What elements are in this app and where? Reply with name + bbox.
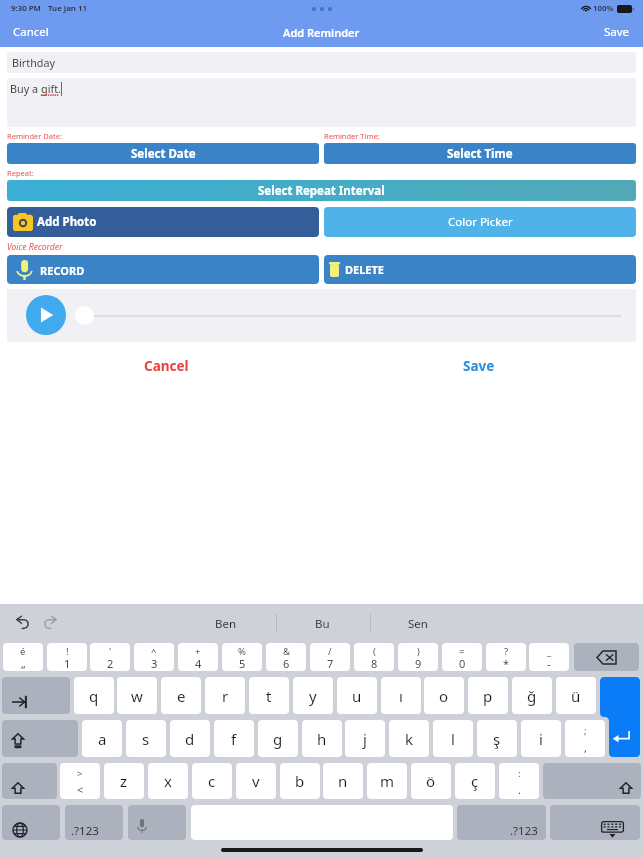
button[interactable]: Language [2, 805, 60, 840]
staticText: c [208, 771, 216, 791]
button[interactable]: Birthday [7, 52, 636, 73]
button[interactable]: r [205, 677, 245, 714]
button[interactable]: k [389, 720, 429, 757]
button[interactable]: Shift [2, 720, 78, 757]
button[interactable]: Buy a [7, 78, 636, 127]
button[interactable]: Select Time [324, 143, 636, 164]
button[interactable]: _ [529, 643, 569, 671]
staticText: j [363, 729, 367, 749]
button[interactable]: Cancel [0, 17, 62, 47]
button[interactable]: Sen [370, 607, 466, 640]
button[interactable]: Undo [6, 606, 39, 640]
button[interactable]: Select Date [7, 143, 319, 164]
button[interactable]: RECORD [7, 255, 319, 284]
staticText: ? [504, 645, 509, 658]
button[interactable]: p [468, 677, 508, 714]
staticText: : [518, 767, 521, 780]
button[interactable]: u [337, 677, 377, 714]
button[interactable]: w [117, 677, 157, 714]
button[interactable]: Return [600, 677, 640, 757]
button[interactable]: v [236, 763, 276, 799]
button[interactable]: Dictation [128, 805, 186, 840]
button[interactable]: .?123 [457, 805, 546, 840]
button[interactable]: é [3, 643, 43, 671]
staticText: > [77, 767, 83, 780]
button[interactable]: & [266, 643, 306, 671]
button[interactable]: ' [90, 643, 130, 671]
button[interactable]: Save [434, 351, 524, 381]
staticText: ü [571, 686, 581, 706]
button[interactable]: = [442, 643, 482, 671]
button[interactable]: / [310, 643, 350, 671]
staticText: = [459, 645, 465, 658]
button[interactable]: Tab [2, 677, 70, 714]
button[interactable]: n [323, 763, 363, 799]
button[interactable]: Shift [2, 763, 57, 799]
button[interactable]: y [293, 677, 333, 714]
button[interactable]: a [82, 720, 122, 757]
button[interactable]: o [424, 677, 464, 714]
button[interactable]: % [222, 643, 262, 671]
button[interactable]: Bu [274, 607, 370, 640]
button[interactable]: h [302, 720, 342, 757]
button[interactable]: g [258, 720, 298, 757]
staticText: ı [399, 686, 403, 706]
button[interactable]: Cancel [120, 351, 212, 381]
button[interactable]: Hide keyboard [550, 805, 640, 840]
button[interactable]: DELETE [324, 255, 636, 284]
button[interactable]: l [433, 720, 473, 757]
button[interactable]: q [74, 677, 114, 714]
button[interactable]: t [249, 677, 289, 714]
button[interactable]: x [148, 763, 188, 799]
button[interactable]: ! [47, 643, 87, 671]
button[interactable]: Play [26, 295, 66, 335]
button[interactable]: ( [354, 643, 394, 671]
button[interactable]: Ben [178, 607, 274, 640]
button[interactable]: ş [477, 720, 517, 757]
button[interactable]: e [161, 677, 201, 714]
staticText: / [328, 645, 332, 658]
button[interactable]: Seek [75, 306, 94, 325]
button[interactable]: ^ [134, 643, 174, 671]
button[interactable]: m [367, 763, 407, 799]
button[interactable]: i [521, 720, 561, 757]
staticText: . [518, 782, 521, 797]
staticText: 4 [195, 656, 202, 671]
button[interactable]: ü [556, 677, 596, 714]
button[interactable]: ) [398, 643, 438, 671]
button[interactable]: b [280, 763, 320, 799]
button[interactable]: ı [381, 677, 421, 714]
staticText: Save [604, 24, 630, 40]
staticText: n [338, 771, 348, 791]
button[interactable]: Backspace [574, 643, 639, 671]
button[interactable]: > [60, 763, 100, 799]
button[interactable]: Redo [39, 606, 72, 640]
button[interactable]: .?123 [65, 805, 123, 840]
staticText: ş [493, 729, 501, 749]
staticText: Select Date [131, 146, 196, 162]
staticText: Tue Jan 11 [48, 3, 87, 14]
button[interactable]: Select Repeat Interval [7, 180, 636, 201]
button[interactable]: c [192, 763, 232, 799]
button[interactable]: ö [411, 763, 451, 799]
button[interactable]: Color Picker [324, 207, 636, 237]
button[interactable]: Save [591, 17, 643, 47]
button[interactable]: f [214, 720, 254, 757]
button[interactable]: z [104, 763, 144, 799]
button[interactable]: ; [565, 720, 605, 757]
button[interactable]: + [178, 643, 218, 671]
button[interactable]: ç [455, 763, 495, 799]
staticText: w [131, 686, 143, 706]
button[interactable]: : [499, 763, 539, 799]
button[interactable]: Add Photo [7, 207, 319, 237]
button[interactable]: ğ [512, 677, 552, 714]
button[interactable]: ? [486, 643, 526, 671]
staticText: ğ [527, 686, 537, 706]
button[interactable]: d [170, 720, 210, 757]
staticText: % [238, 645, 246, 658]
staticText: Cancel [13, 24, 49, 40]
button[interactable]: j [345, 720, 385, 757]
button[interactable]: Shift [543, 763, 641, 799]
button[interactable]: s [126, 720, 166, 757]
